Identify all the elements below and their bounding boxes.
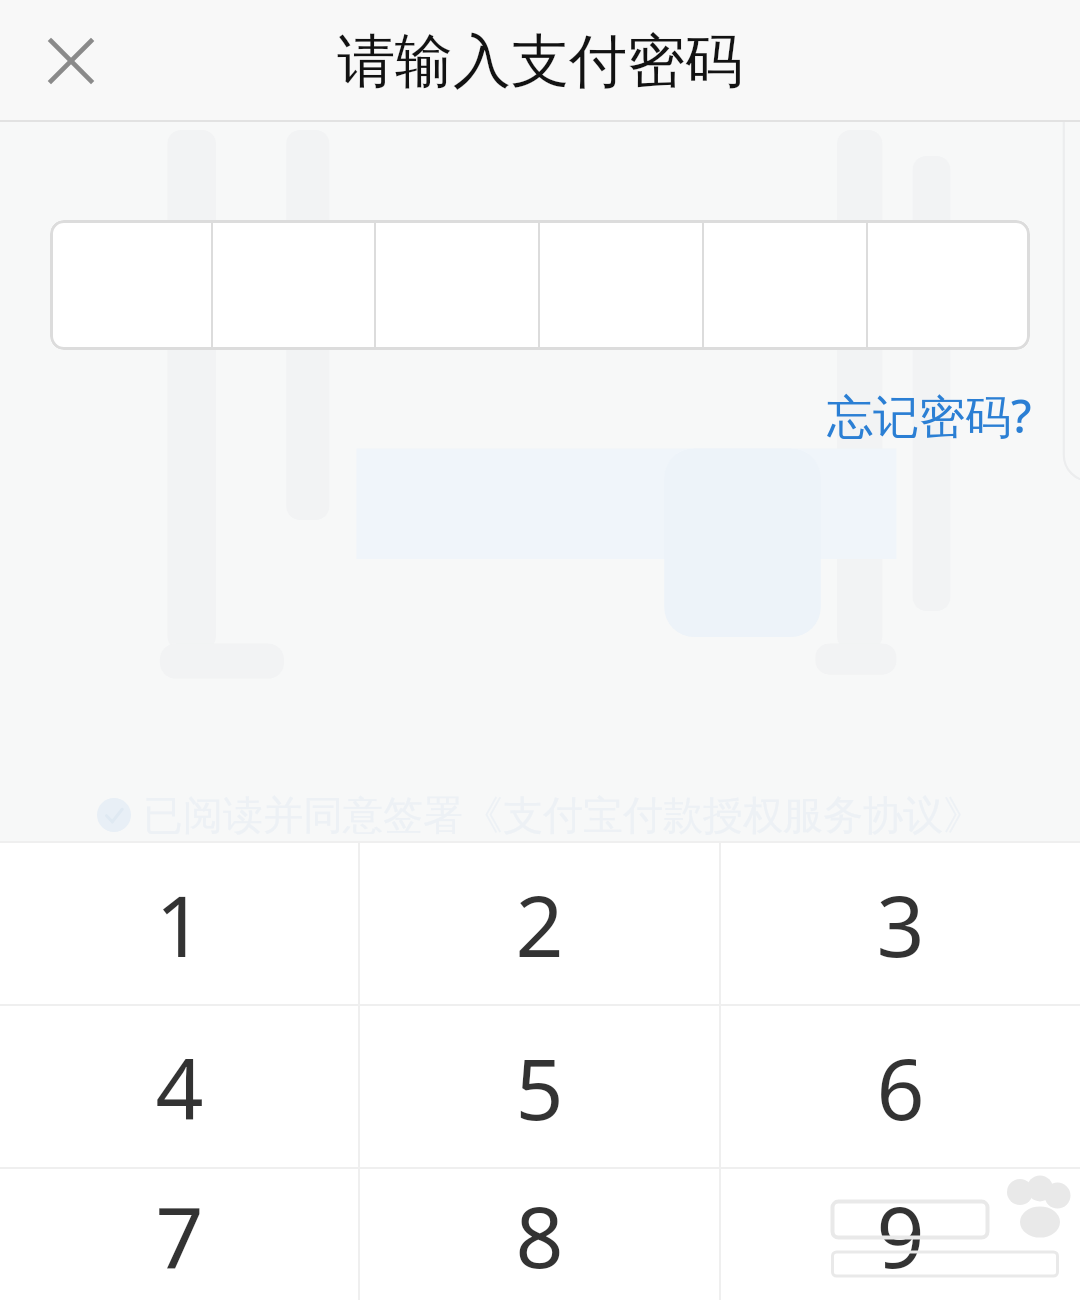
staticText: 2: [515, 867, 564, 981]
staticText: 3: [876, 867, 925, 981]
staticText: 1: [155, 867, 204, 981]
staticText: 已阅读并同意签署《支付宝付款授权服务协议》: [143, 790, 983, 840]
button[interactable]: 1: [0, 843, 358, 1004]
button[interactable]: 支付密码输入框: [50, 220, 1030, 350]
button[interactable]: 2: [360, 843, 719, 1004]
staticText: 请输入支付密码: [337, 25, 743, 98]
staticText: 忘记密码?: [827, 384, 1032, 447]
button[interactable]: 忘记密码?: [823, 378, 1036, 453]
staticText: 8: [515, 1178, 564, 1292]
button[interactable]: 3: [721, 843, 1080, 1004]
staticText: 4: [155, 1030, 204, 1144]
staticText: 7: [155, 1178, 204, 1292]
staticText: 6: [876, 1030, 925, 1144]
button[interactable]: 7: [0, 1169, 358, 1300]
button[interactable]: 6: [721, 1006, 1080, 1167]
button[interactable]: 8: [360, 1169, 719, 1300]
button[interactable]: 5: [360, 1006, 719, 1167]
button[interactable]: 9: [721, 1169, 1080, 1300]
staticText: 5: [515, 1030, 564, 1144]
staticText: 9: [876, 1178, 925, 1292]
button[interactable]: 关闭: [28, 18, 114, 104]
button[interactable]: 4: [0, 1006, 358, 1167]
